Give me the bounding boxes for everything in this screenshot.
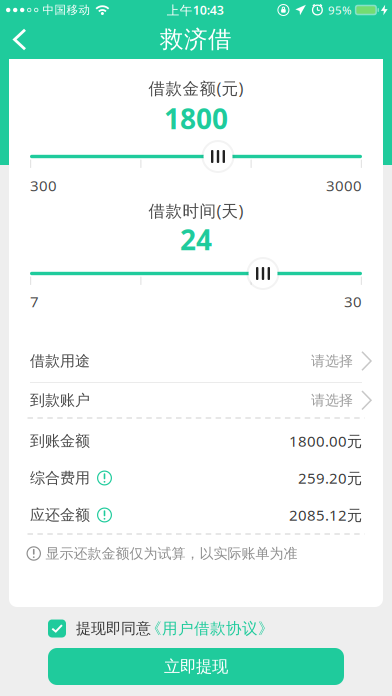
staticText: 借款时间(天) — [148, 199, 243, 222]
staticText: 300 — [30, 175, 57, 196]
staticText: 《用户借款协议》 — [146, 619, 274, 638]
staticText: 到账金额 — [30, 432, 90, 450]
staticText: 借款用途 — [30, 352, 90, 370]
staticText: 95% — [328, 2, 352, 18]
button[interactable]: 立即提现 — [48, 648, 344, 685]
staticText: 立即提现 — [164, 656, 228, 677]
staticText: 259.20元 — [298, 468, 362, 488]
staticText: 请选择 — [311, 352, 353, 370]
staticText: 借款金额(元) — [148, 77, 243, 99]
staticText: 请选择 — [311, 391, 353, 409]
staticText: 综合费用 — [30, 469, 90, 487]
staticText: 到款账户 — [30, 391, 90, 410]
staticText: 24 — [180, 220, 212, 258]
staticText: 2085.12元 — [289, 505, 362, 525]
button[interactable] — [97, 470, 112, 485]
staticText: 救济借 — [160, 25, 232, 54]
button[interactable] — [97, 507, 112, 522]
staticText: 上午10:43 — [167, 1, 224, 18]
button[interactable]: 到款账户 — [9, 383, 383, 417]
button[interactable] — [201, 140, 234, 173]
staticText: 中国移动 — [42, 3, 90, 17]
staticText: 提现即同意 — [76, 619, 151, 638]
button[interactable] — [0, 20, 45, 59]
staticText: 3000 — [326, 175, 362, 196]
staticText: 1800.00元 — [289, 431, 362, 451]
staticText: 显示还款金额仅为试算，以实际账单为准 — [45, 545, 297, 562]
staticText: 1800 — [164, 99, 228, 137]
button[interactable]: 借款用途 — [9, 340, 383, 382]
staticText: 应还金额 — [30, 506, 90, 524]
button[interactable]: 《用户借款协议》 — [146, 619, 274, 638]
button[interactable] — [246, 257, 279, 290]
staticText: 30 — [344, 291, 362, 312]
button[interactable]: 提现即同意 — [48, 619, 151, 638]
staticText: 7 — [30, 291, 39, 312]
